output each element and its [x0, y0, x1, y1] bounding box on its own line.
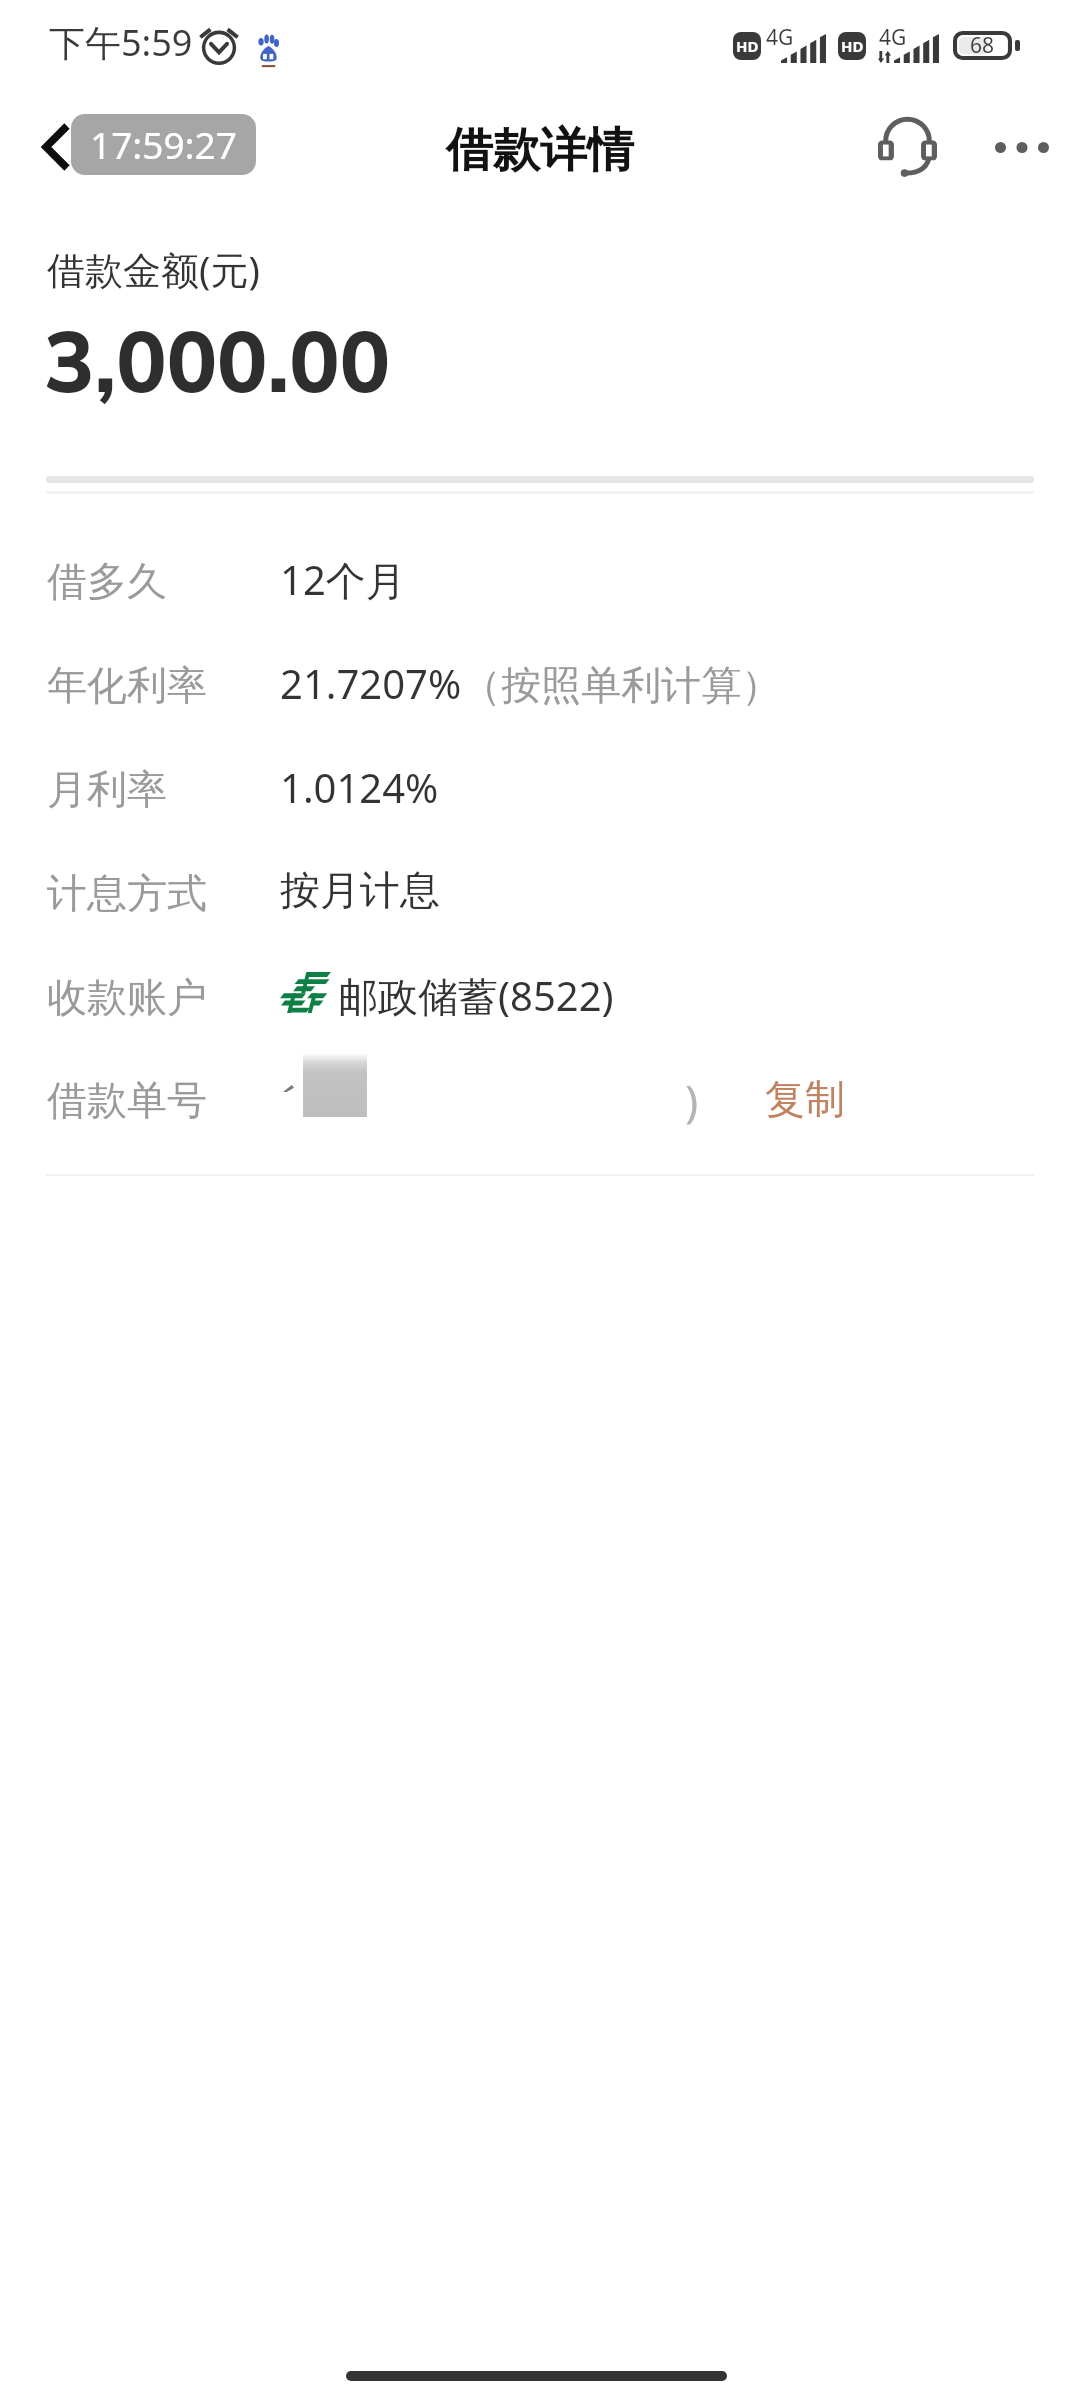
button[interactable]: 复制	[725, 1048, 885, 1152]
staticText: 借款详情	[446, 121, 634, 180]
staticText: 月利率	[47, 764, 167, 814]
button[interactable]: More options	[976, 101, 1068, 193]
staticText: 下午5:59	[49, 18, 193, 67]
staticText: 借款金额(元)	[47, 243, 260, 295]
staticText: HD	[841, 36, 864, 56]
staticText: 借多久	[47, 556, 167, 606]
button[interactable]: Back	[10, 101, 102, 193]
button[interactable]: Customer service	[861, 101, 953, 193]
staticText: HD	[736, 36, 759, 56]
staticText: 17:59:27	[90, 119, 237, 169]
staticText: 收款账户	[47, 972, 207, 1022]
staticText: 计息方式	[47, 868, 207, 918]
staticText: 3,000.00	[44, 308, 391, 413]
staticText: 21.7207%（按照单利计算）	[280, 656, 782, 708]
staticText: 年化利率	[47, 660, 207, 710]
staticText: 复制	[765, 1074, 845, 1124]
staticText: 4G	[766, 23, 794, 52]
staticText: 借款单号	[47, 1075, 207, 1125]
staticText: 68	[970, 31, 995, 60]
staticText: 按月计息	[280, 865, 440, 915]
staticText: 1.0124%	[280, 760, 439, 812]
staticText: 12个月	[280, 552, 406, 604]
staticText: 4G	[879, 23, 907, 52]
staticText: )	[685, 1070, 699, 1130]
staticText: 邮政储蓄(8522)	[338, 968, 614, 1020]
